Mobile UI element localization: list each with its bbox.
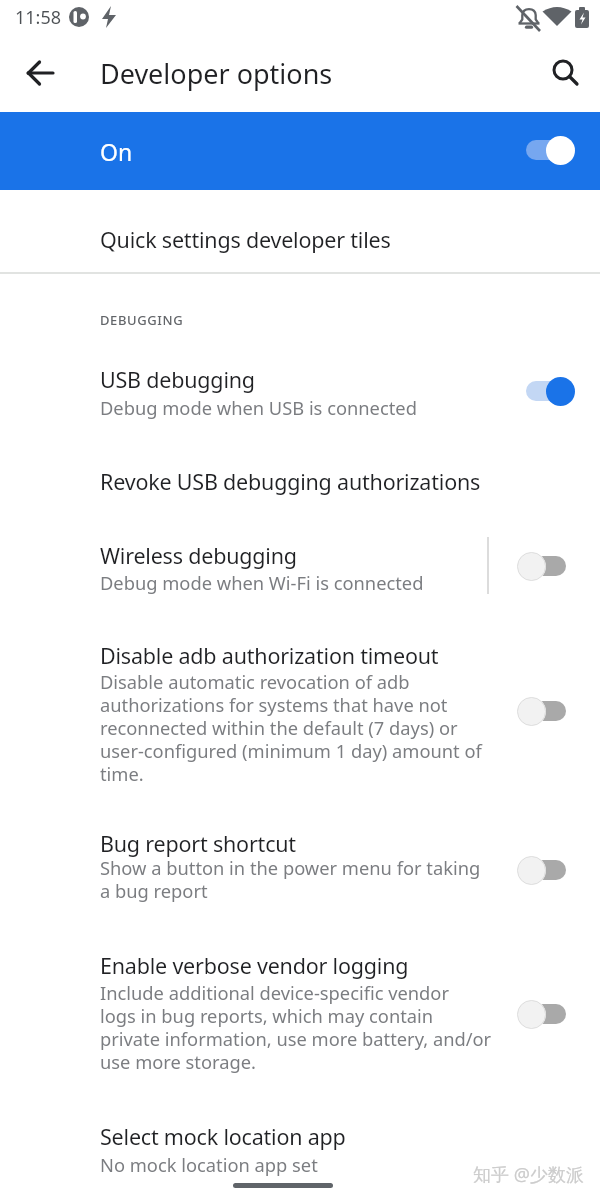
button[interactable]: Enable verbose vendor logging — [0, 935, 600, 1078]
staticText: Enable verbose vendor logging — [100, 951, 409, 980]
staticText: Bug report shortcut — [100, 829, 296, 858]
staticText: On — [100, 136, 133, 167]
staticText: No mock location app set — [100, 1152, 318, 1177]
staticText: Show a button in the power menu for taki… — [100, 855, 481, 880]
staticText: DEBUGGING — [100, 311, 184, 329]
button[interactable]: Bug report shortcut — [0, 810, 600, 913]
staticText: logs in bug reports, which may contain — [100, 1003, 434, 1028]
staticText: reconnected within the default (7 days) … — [100, 715, 458, 740]
staticText: Include additional device-specific vendo… — [100, 980, 449, 1005]
staticText: a bug report — [100, 878, 208, 903]
staticText: 知乎 @少数派 — [473, 1162, 584, 1187]
staticText: Quick settings developer tiles — [100, 225, 391, 254]
button[interactable] — [541, 48, 589, 96]
staticText: Revoke USB debugging authorizations — [100, 467, 481, 496]
staticText: Disable adb authorization timeout — [100, 641, 439, 670]
button[interactable]: Quick settings developer tiles — [0, 190, 600, 273]
button[interactable]: Disable adb authorization timeout — [0, 625, 600, 791]
staticText: use more storage. — [100, 1049, 256, 1074]
staticText: Disable automatic revocation of adb — [100, 669, 410, 694]
button[interactable]: USB debugging — [0, 340, 600, 444]
staticText: USB debugging — [100, 365, 255, 394]
button[interactable] — [16, 49, 64, 97]
staticText: private information, use more battery, a… — [100, 1026, 492, 1051]
button[interactable]: Revoke USB debugging authorizations — [0, 444, 600, 520]
staticText: Wireless debugging — [100, 541, 297, 570]
staticText: Select mock location app — [100, 1122, 346, 1151]
staticText: Debug mode when USB is connected — [100, 395, 417, 420]
staticText: Debug mode when Wi-Fi is connected — [100, 570, 424, 595]
staticText: user-configured (minimum 1 day) amount o… — [100, 738, 482, 763]
staticText: authorizations for systems that have not — [100, 692, 448, 717]
button[interactable]: On — [0, 112, 600, 190]
staticText: Developer options — [100, 55, 333, 92]
button[interactable]: Wireless debugging — [0, 520, 600, 618]
staticText: time. — [100, 761, 144, 786]
button[interactable]: Select mock location app — [0, 1100, 600, 1185]
staticText: 11:58 — [15, 5, 62, 30]
